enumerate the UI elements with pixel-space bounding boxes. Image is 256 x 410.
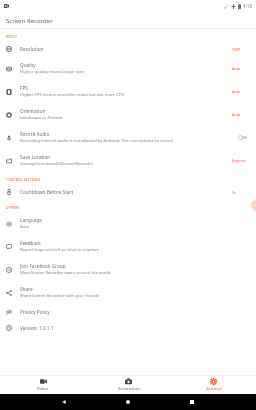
staticText: /storage/emulated/0/ScreenRecorder — [20, 161, 94, 167]
staticText: Countdown Before Start — [20, 189, 74, 195]
button[interactable]: Screenshot — [86, 376, 171, 394]
staticText: Privacy Policy — [20, 309, 50, 315]
staticText: Feedback — [20, 240, 41, 246]
staticText: Quality — [20, 62, 36, 68]
button[interactable]: Settings — [171, 376, 256, 394]
staticText: Auto — [20, 224, 30, 230]
staticText: Version: 1.0.1.1 — [20, 325, 54, 331]
staticText: Share — [20, 286, 33, 292]
staticText: VIDEO — [6, 35, 17, 39]
button[interactable]: Video — [0, 376, 86, 394]
staticText: Report bugs and tell us what to improve — [20, 247, 99, 253]
staticText: Higher FPS means smoother video but use … — [20, 92, 125, 98]
button[interactable]: Feedback — [0, 235, 256, 258]
staticText: Language — [20, 217, 42, 223]
staticText: Meet Screen Recorder users around the wo… — [20, 270, 111, 276]
staticText: 3s — [232, 190, 236, 195]
staticText: Screenshot — [118, 386, 140, 392]
button[interactable]: Save Location — [0, 149, 256, 172]
button[interactable]: Record Audio — [0, 126, 256, 149]
staticText: Internal — [232, 158, 246, 163]
staticText: Video — [37, 386, 49, 392]
staticText: CONTROL SETTINGS — [6, 178, 41, 182]
staticText: Settings — [206, 386, 222, 392]
staticText: 720P — [232, 47, 241, 52]
button[interactable]: FPS — [0, 80, 256, 103]
staticText: Save Location — [20, 154, 51, 160]
staticText: Higher quality means larger size — [20, 69, 84, 75]
staticText: Landscape or Portrait — [20, 115, 63, 121]
other: Home — [126, 400, 130, 404]
staticText: Screen Recorder — [6, 16, 53, 24]
staticText: Auto — [232, 89, 241, 94]
staticText: Recording internal audio is not allowed … — [20, 138, 173, 144]
button[interactable]: Quality — [0, 57, 256, 80]
button[interactable]: Privacy Policy — [0, 304, 256, 320]
button[interactable]: Language — [0, 212, 256, 235]
button[interactable]: Resolution — [0, 41, 256, 57]
button[interactable]: Share — [0, 281, 256, 304]
staticText: Share Screen Recorder with your friends — [20, 293, 100, 299]
staticText: Auto — [232, 112, 241, 117]
staticText: Join Facebook Group — [20, 263, 66, 269]
button[interactable]: Orientation — [0, 103, 256, 126]
staticText: Auto — [232, 66, 241, 71]
staticText: Record Audio — [20, 131, 50, 137]
staticText: OTHERS — [6, 206, 20, 210]
button[interactable]: Join Facebook Group — [0, 258, 256, 281]
staticText: 4:16 — [243, 3, 253, 9]
button[interactable]: Version: 1.0.1.1 — [0, 320, 256, 336]
staticText: Orientation — [20, 108, 46, 114]
button[interactable]: Countdown Before Start — [0, 184, 256, 200]
staticText: Resolution — [20, 46, 44, 52]
other: Floating recorder button — [0, 29, 256, 375]
other: Back — [62, 400, 66, 404]
staticText: FPS — [20, 85, 28, 91]
